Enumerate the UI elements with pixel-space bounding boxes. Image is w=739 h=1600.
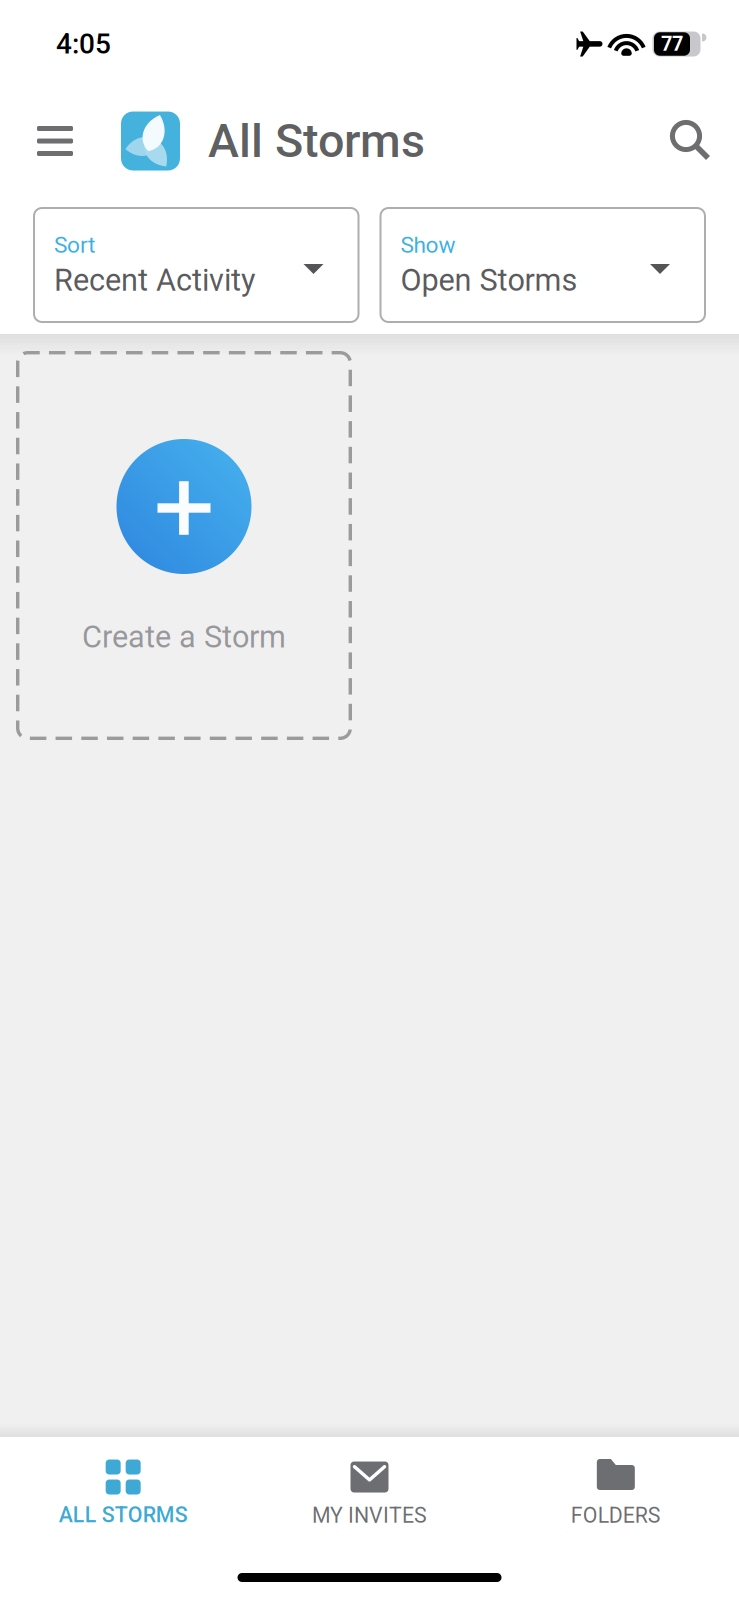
staticText: 77 [661,32,683,56]
button[interactable]: Show [379,207,706,323]
staticText: FOLDERS [571,1503,661,1528]
staticText: Open Storms [400,262,577,298]
button[interactable]: Create a Storm [16,351,352,740]
staticText: Recent Activity [54,262,256,298]
staticText: Show [400,232,455,258]
button[interactable]: ALL STORMS [0,1437,246,1541]
staticText: ALL STORMS [59,1502,188,1527]
button[interactable]: Sort [33,207,359,323]
button[interactable]: Search [648,98,739,184]
staticText: Create a Storm [82,619,286,655]
button[interactable]: Menu [0,100,121,182]
staticText: MY INVITES [312,1503,427,1528]
staticText: All Storms [208,114,425,168]
staticText: Sort [54,232,95,258]
staticText: 4:05 [56,28,111,60]
button[interactable]: FOLDERS [493,1437,739,1542]
button[interactable]: MY INVITES [246,1437,493,1542]
